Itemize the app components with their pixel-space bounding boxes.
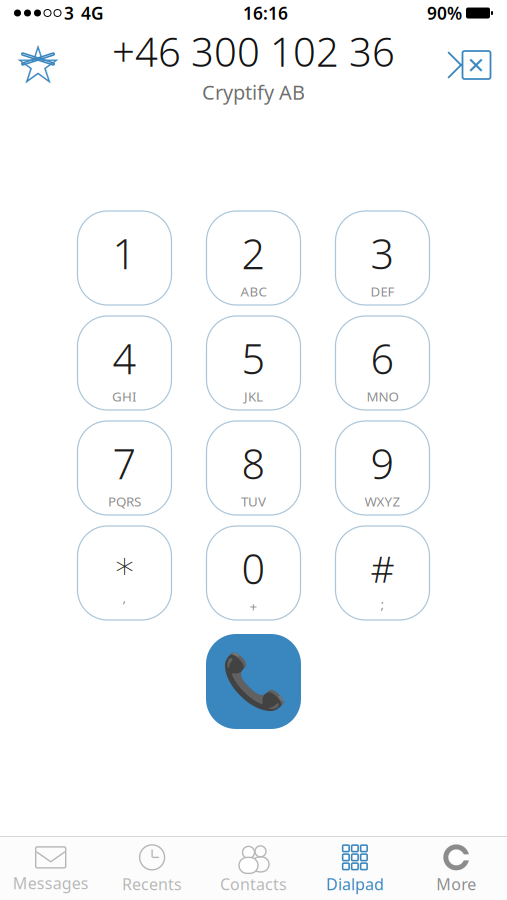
button[interactable]: Dialpad [304,837,406,900]
staticText: + [249,598,257,615]
button[interactable]: 1 [77,211,171,305]
staticText: GHI [112,388,137,405]
staticText: DEF [370,283,394,300]
staticText: Dialpad [326,873,384,895]
button[interactable]: 4 [77,316,171,410]
staticText: 8 [241,436,265,491]
button[interactable]: # [335,526,429,620]
button[interactable]: Messages [0,837,101,900]
staticText: 0 [241,541,265,596]
staticText: 4G [81,1,104,24]
button[interactable]: 2 [206,211,300,305]
button[interactable]: Add to favourites [8,35,68,95]
staticText: Messages [13,872,89,894]
staticText: 6 [370,331,394,386]
staticText: , [122,588,126,606]
button[interactable]: 0 [206,526,300,620]
button[interactable]: 3 [335,211,429,305]
staticText: +46 300 102 36 [112,25,395,78]
button[interactable]: 6 [335,316,429,410]
staticText: ; [380,595,384,613]
staticText: MNO [366,388,398,405]
staticText: # [370,543,394,593]
staticText: Cryptify AB [202,79,305,105]
staticText: 4 [112,331,136,386]
button[interactable]: Delete [439,35,499,95]
staticText: JKL [244,388,263,405]
staticText: Recents [122,873,182,895]
button[interactable]: Call [206,634,301,729]
staticText: × [467,44,484,83]
staticText: More [436,873,476,895]
staticText: 3 [64,1,74,24]
button[interactable]: 7 [77,421,171,515]
staticText: 3 [370,226,394,281]
staticText: ABC [240,283,266,300]
button[interactable]: Contacts [203,837,304,900]
staticText: 7 [112,436,136,491]
staticText: ☆ [14,35,62,95]
staticText: 1 [112,226,136,281]
button[interactable]: ∗ [77,526,171,620]
staticText: WXYZ [364,493,400,510]
button[interactable]: 8 [206,421,300,515]
button[interactable]: More [406,837,507,900]
staticText: 2 [241,226,265,281]
button[interactable]: 9 [335,421,429,515]
staticText: 9 [370,436,394,491]
staticText: Contacts [220,873,287,895]
button[interactable]: 5 [206,316,300,410]
staticText: 📞 [220,651,286,712]
button[interactable]: Recents [101,837,203,900]
staticText: 90% [427,1,462,24]
staticText: TUV [241,493,266,510]
staticText: PQRS [108,493,141,510]
staticText: ∗ [113,544,136,586]
staticText: 5 [241,331,265,386]
staticText: 16:16 [243,1,288,24]
